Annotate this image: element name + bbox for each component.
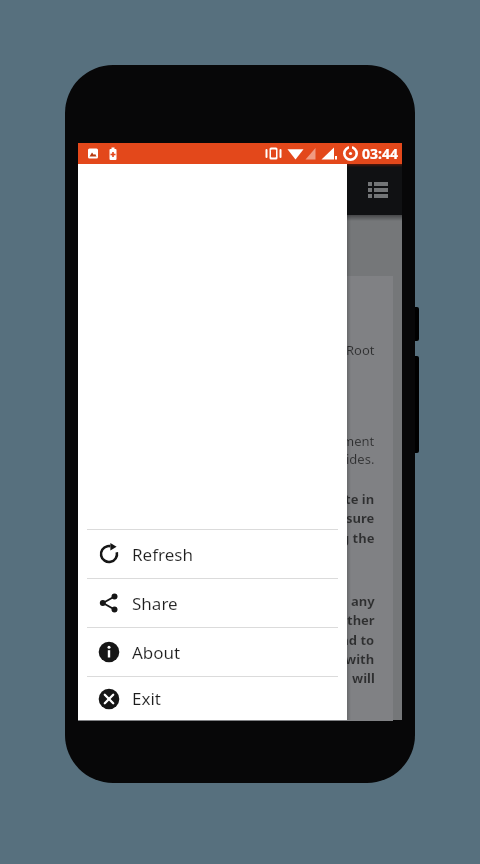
button[interactable]: About [78,628,347,676]
staticText: ther [347,611,375,629]
staticText: with [345,650,375,668]
staticText: g the [341,529,375,547]
button[interactable]: Share [78,579,347,627]
staticText: ides. [346,450,375,468]
staticText: any [351,592,375,610]
button[interactable]: Exit [78,677,347,720]
staticText: ad to [341,631,375,649]
staticText: sure [346,509,375,527]
staticText: Refresh [132,543,193,566]
staticText: Root [346,341,375,359]
staticText: ment [342,432,375,450]
staticText: will [352,669,375,687]
staticText: Share [132,592,178,615]
button[interactable]: Refresh [78,530,347,578]
staticText: Exit [132,687,161,710]
staticText: 03:44 [362,144,398,163]
button[interactable] [360,172,396,208]
staticText: About [132,641,181,664]
staticText: te in [345,490,375,508]
